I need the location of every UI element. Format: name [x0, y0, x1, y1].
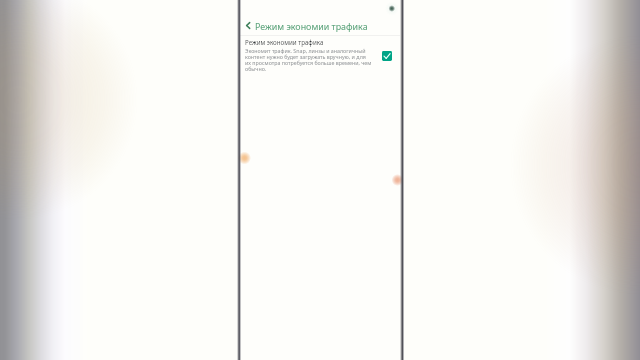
- staticText: Экономит трафик. Snap, линзы и аналогичн…: [245, 47, 373, 72]
- button[interactable]: Data saver toggle: [382, 51, 392, 61]
- button[interactable]: Back: [240, 16, 400, 35]
- button[interactable]: Режим экономии трафика: [240, 36, 400, 72]
- staticText: Режим экономии трафика: [245, 38, 324, 46]
- staticText: Режим экономии трафика: [255, 20, 368, 32]
- other: Back: [246, 21, 250, 30]
